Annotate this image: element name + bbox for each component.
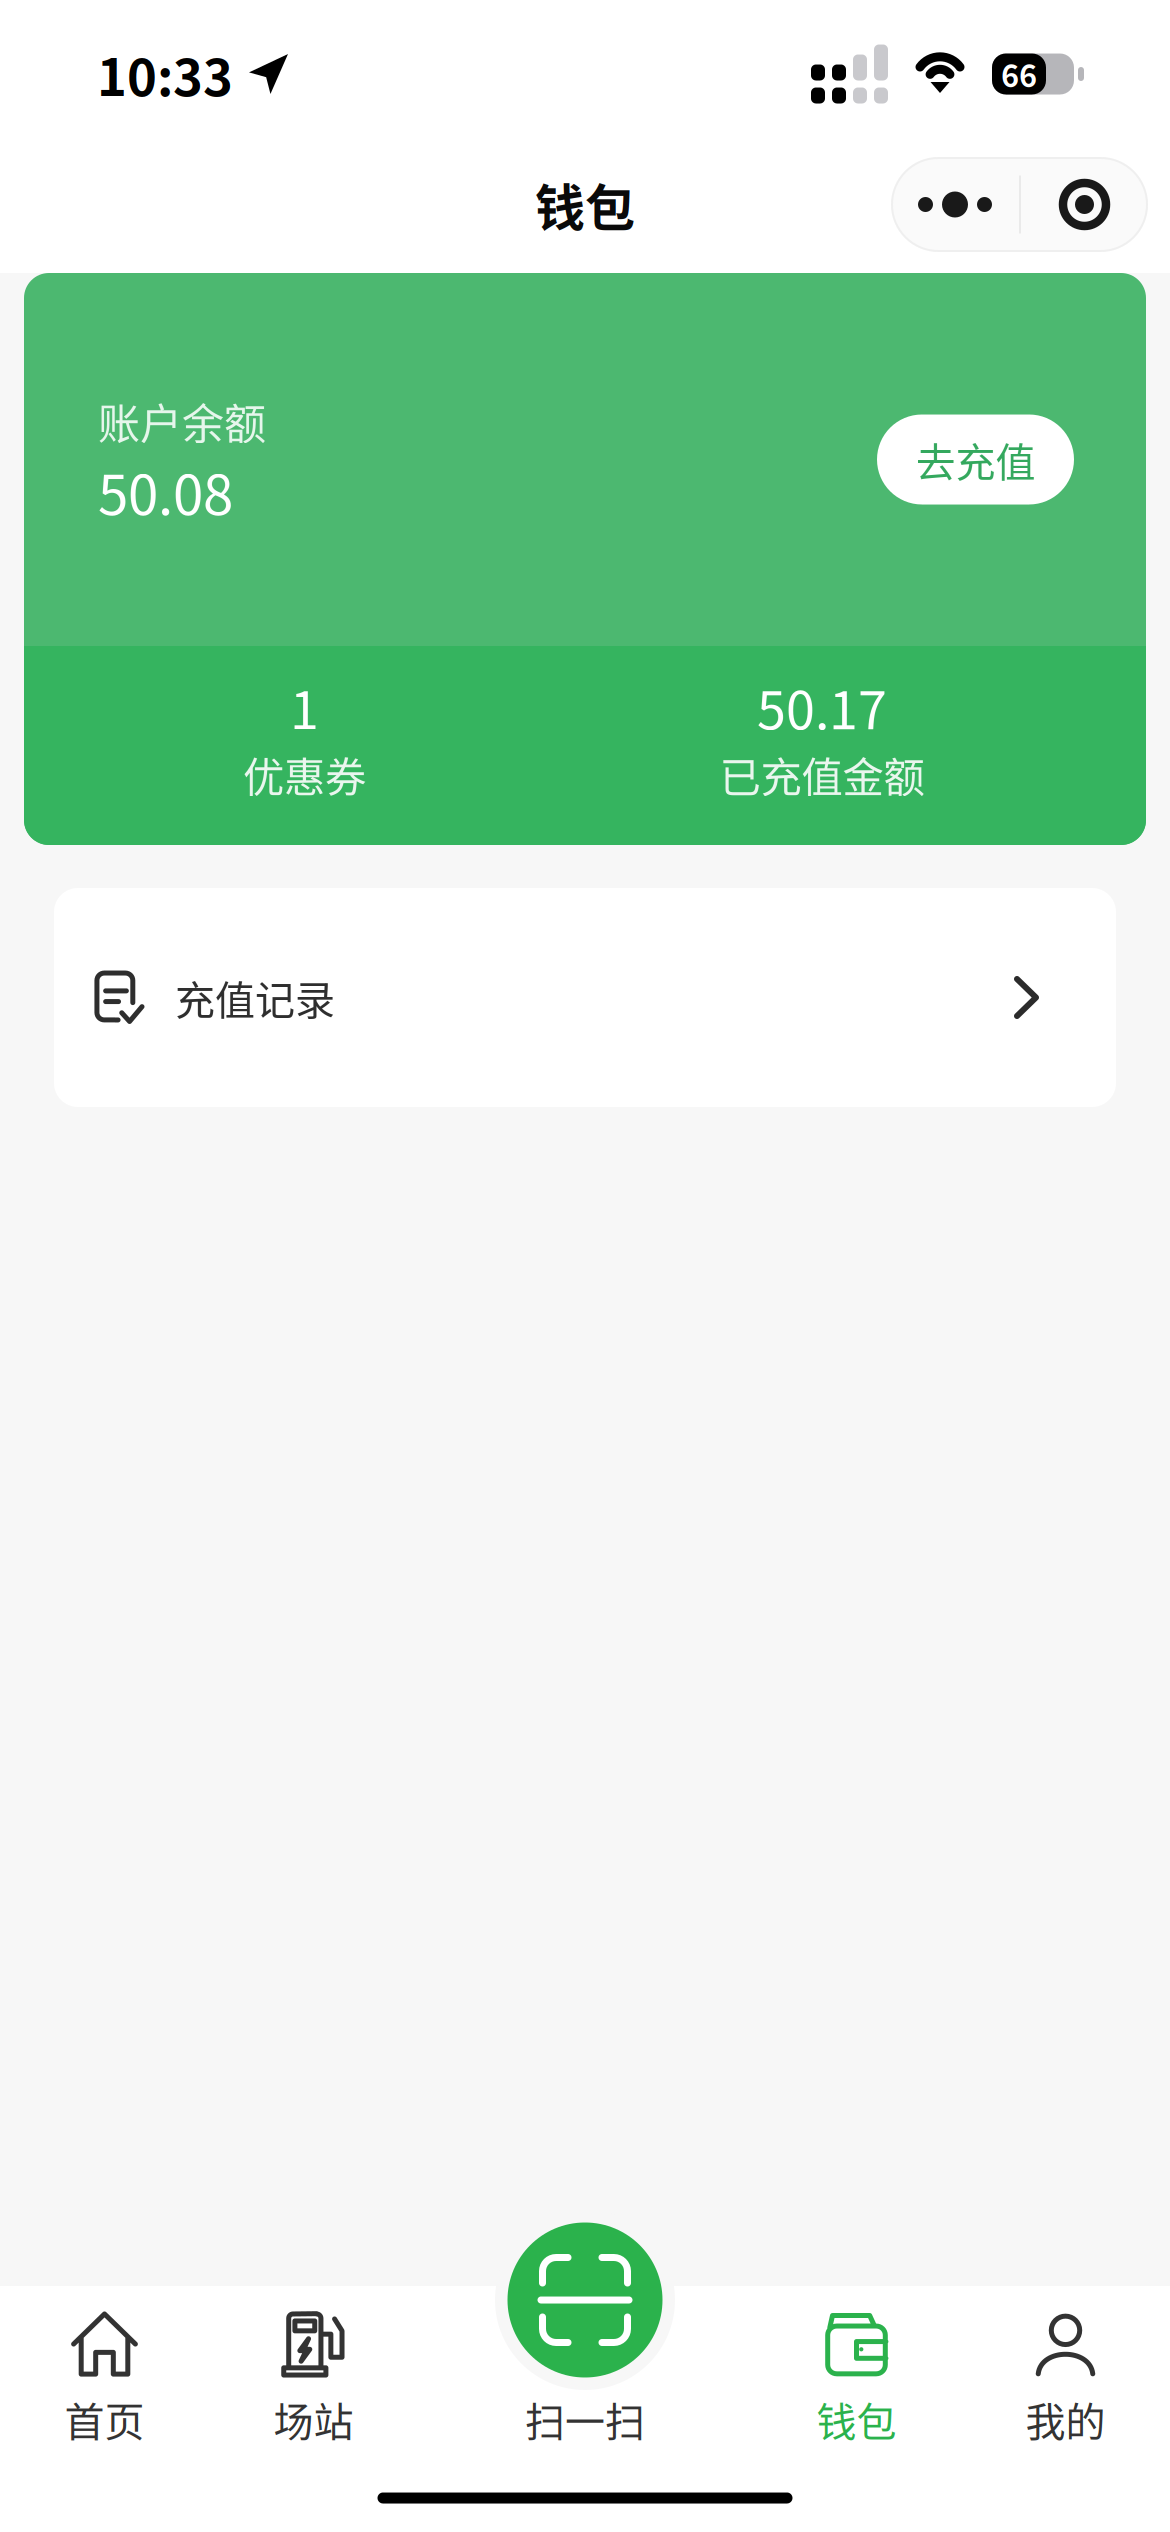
button[interactable]: 更多 <box>891 157 1019 252</box>
staticText: 扫一扫 <box>525 2390 645 2448</box>
button[interactable]: 首页 <box>0 2311 209 2447</box>
staticText: 66 <box>1001 52 1037 96</box>
staticText: 1 <box>290 669 319 744</box>
staticText: 充值记录 <box>175 968 335 1026</box>
staticText: 10:33 <box>97 37 233 111</box>
button[interactable]: 去充值 <box>877 414 1074 504</box>
staticText: 50.08 <box>98 451 233 530</box>
button[interactable]: 钱包 <box>752 2311 961 2447</box>
staticText: 已充值金额 <box>719 744 924 804</box>
staticText: 首页 <box>64 2390 144 2448</box>
button[interactable]: 关闭 <box>1021 157 1148 252</box>
button[interactable]: 我的 <box>961 2311 1170 2447</box>
staticText: 我的 <box>1025 2390 1105 2448</box>
staticText: 账户余额 <box>98 390 266 451</box>
button[interactable]: 扫一扫 <box>495 2210 675 2390</box>
staticText: 50.17 <box>757 669 887 744</box>
button[interactable]: 充值记录 <box>54 888 1116 1107</box>
staticText: 场站 <box>273 2390 353 2448</box>
button[interactable]: 扫一扫 <box>418 2311 752 2447</box>
staticText: 钱包 <box>816 2390 896 2448</box>
button[interactable]: 场站 <box>209 2311 418 2447</box>
staticText: 优惠券 <box>243 744 366 804</box>
staticText: 去充值 <box>915 430 1035 488</box>
staticText: 钱包 <box>535 168 635 241</box>
